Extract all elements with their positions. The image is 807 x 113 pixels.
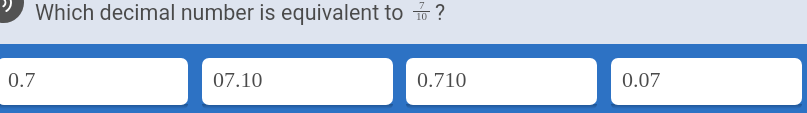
button[interactable]: 0.07	[611, 58, 802, 105]
staticText: 07.10	[213, 67, 263, 91]
button[interactable]: 07.10	[202, 58, 393, 105]
staticText: 10	[416, 10, 427, 22]
button[interactable]: 0.710	[406, 58, 597, 105]
staticText: 0.07	[622, 67, 661, 91]
button[interactable]: Play audio	[0, 0, 24, 23]
button[interactable]: 0.7	[0, 58, 188, 105]
staticText: 7	[419, 0, 425, 11]
staticText: ?	[435, 0, 446, 25]
staticText: Which decimal number is equivalent to	[35, 0, 404, 25]
staticText: 0.710	[417, 67, 467, 91]
staticText: 0.7	[8, 67, 36, 91]
